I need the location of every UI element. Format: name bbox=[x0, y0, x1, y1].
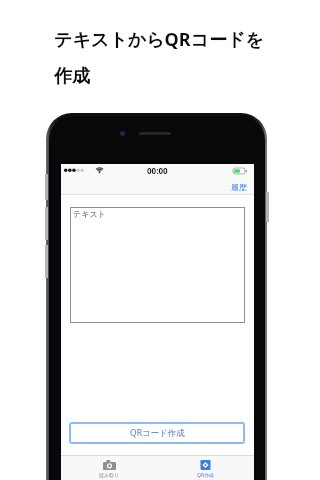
staticText: テキストからQRコードを 作成 bbox=[54, 27, 264, 87]
staticText: 00:00 bbox=[147, 165, 168, 176]
staticText: QRコード作成 bbox=[130, 427, 185, 439]
staticText: テキスト bbox=[73, 209, 106, 219]
button[interactable]: QR作成 bbox=[157, 456, 254, 479]
button[interactable]: 履歴 bbox=[230, 181, 248, 193]
other: QR作成 bbox=[199, 460, 212, 470]
staticText: 履歴 bbox=[231, 182, 247, 192]
other: 読み取り bbox=[103, 460, 116, 470]
button[interactable]: QRコード作成 bbox=[69, 422, 245, 444]
button[interactable]: 読み取り bbox=[61, 456, 157, 478]
staticText: QR作成 bbox=[197, 472, 215, 479]
staticText: 読み取り bbox=[99, 472, 120, 478]
button[interactable]: テキスト bbox=[70, 207, 245, 323]
